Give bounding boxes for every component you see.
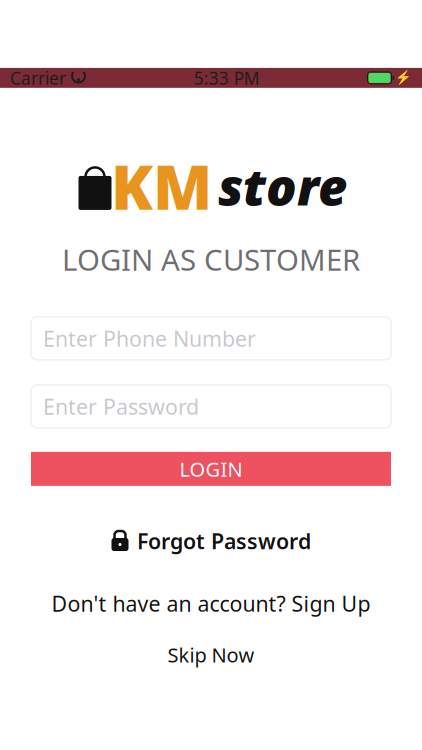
staticText: Enter Password: [43, 392, 199, 420]
staticText: Skip Now: [167, 641, 254, 668]
button[interactable]: LOGIN: [31, 452, 391, 486]
staticText: Enter Phone Number: [43, 324, 256, 352]
staticText: ⚡: [395, 70, 412, 85]
staticText: LOGIN: [179, 456, 242, 482]
button[interactable]: Enter Phone Number: [31, 317, 391, 360]
staticText: Don't have an account? Sign Up: [51, 589, 370, 617]
button[interactable]: Don't have an account? Sign Up: [41, 583, 380, 623]
button[interactable]: Enter Password: [31, 385, 391, 428]
staticText: store: [218, 152, 347, 220]
button[interactable]: Forgot Password: [101, 521, 321, 561]
staticText: LOGIN AS CUSTOMER: [62, 240, 360, 279]
staticText: 5:33 PM: [194, 66, 260, 89]
button[interactable]: Skip Now: [157, 635, 264, 674]
staticText: KM: [111, 145, 212, 227]
staticText: Carrier: [10, 66, 66, 89]
staticText: Forgot Password: [137, 527, 311, 555]
